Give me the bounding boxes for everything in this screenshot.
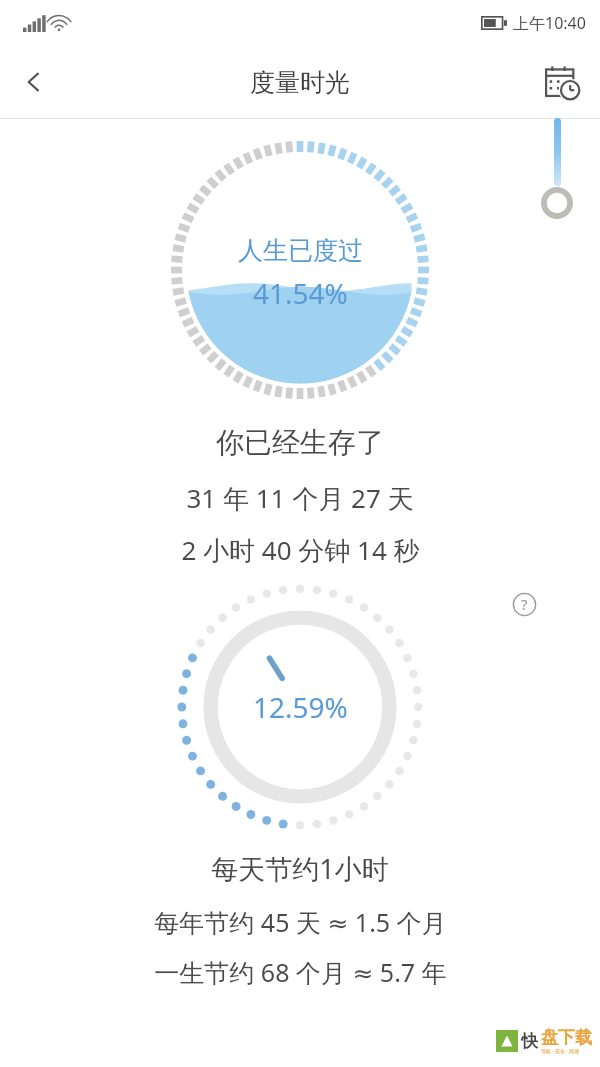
button[interactable]: 人生已度过 41.54% [171,141,429,399]
button[interactable]: Help [504,584,544,624]
staticText: 每年节约 45 天 ≈ 1.5 个月 [154,905,447,939]
staticText: 31 年 11 个月 27 天 [186,480,414,516]
staticText: 2 小时 40 分钟 14 秒 [181,532,420,568]
staticText: 一生节约 68 个月 ≈ 5.7 年 [154,955,447,989]
staticText: 人生已度过 [238,235,363,266]
staticText: ? [521,594,528,614]
staticText: 度量时光 [250,67,350,98]
staticText: 盘下载 [541,1027,592,1048]
staticText: 你已经生存了 [216,425,384,460]
button[interactable]: Calendar history [534,54,590,110]
staticText: 41.54% [253,274,348,312]
staticText: 每天节约1小时 [211,850,389,887]
staticText: 导航 · 安全 · 高速 [541,1048,579,1055]
staticText: 快 [521,1031,538,1052]
button[interactable]: 每日节约 12.59% [175,582,425,832]
button[interactable]: Back [6,54,62,110]
button[interactable]: Timeline handle [540,186,574,220]
staticText: 上午10:40 [513,12,586,34]
staticText: 12.59% [253,688,348,726]
